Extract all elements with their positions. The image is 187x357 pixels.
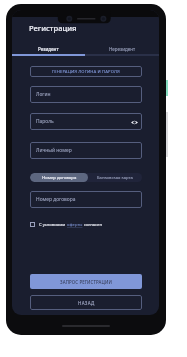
button[interactable]: Показать пароль <box>130 118 138 126</box>
staticText: Пароль <box>36 118 54 125</box>
staticText: ЗАПРОС РЕГИСТРАЦИИ <box>60 279 112 285</box>
button[interactable]: НАЗАД <box>30 295 142 310</box>
staticText: С условиями <box>39 222 67 228</box>
button[interactable]: Резидент <box>12 44 85 54</box>
staticText: Логин <box>36 91 51 98</box>
staticText: Регистрация <box>29 23 77 33</box>
staticText: Номер договора <box>36 196 76 203</box>
staticText: Резидент <box>38 46 59 52</box>
button[interactable]: Нерезидент <box>85 44 159 54</box>
button[interactable]: Личный номер <box>30 142 142 159</box>
button[interactable]: Банковская карта <box>88 173 142 182</box>
button[interactable]: Номер договора <box>30 191 142 208</box>
staticText: Номер договора <box>42 175 77 181</box>
staticText: согласен <box>83 222 102 228</box>
button[interactable]: Номер договора <box>30 173 88 182</box>
staticText: ГЕНЕРАЦИЯ ЛОГИНА И ПАРОЛЯ <box>52 69 120 75</box>
staticText: оферты <box>67 222 83 228</box>
staticText: НАЗАД <box>78 300 95 306</box>
staticText: Личный номер <box>36 147 72 154</box>
button[interactable]: ГЕНЕРАЦИЯ ЛОГИНА И ПАРОЛЯ <box>30 66 142 77</box>
staticText: Банковская карта <box>97 175 133 181</box>
button[interactable]: Логин <box>30 86 142 103</box>
button[interactable]: ЗАПРОС РЕГИСТРАЦИИ <box>30 274 142 289</box>
button[interactable]: Пароль <box>30 113 142 130</box>
staticText: Нерезидент <box>109 46 136 52</box>
button[interactable]: С условиями <box>30 221 142 228</box>
